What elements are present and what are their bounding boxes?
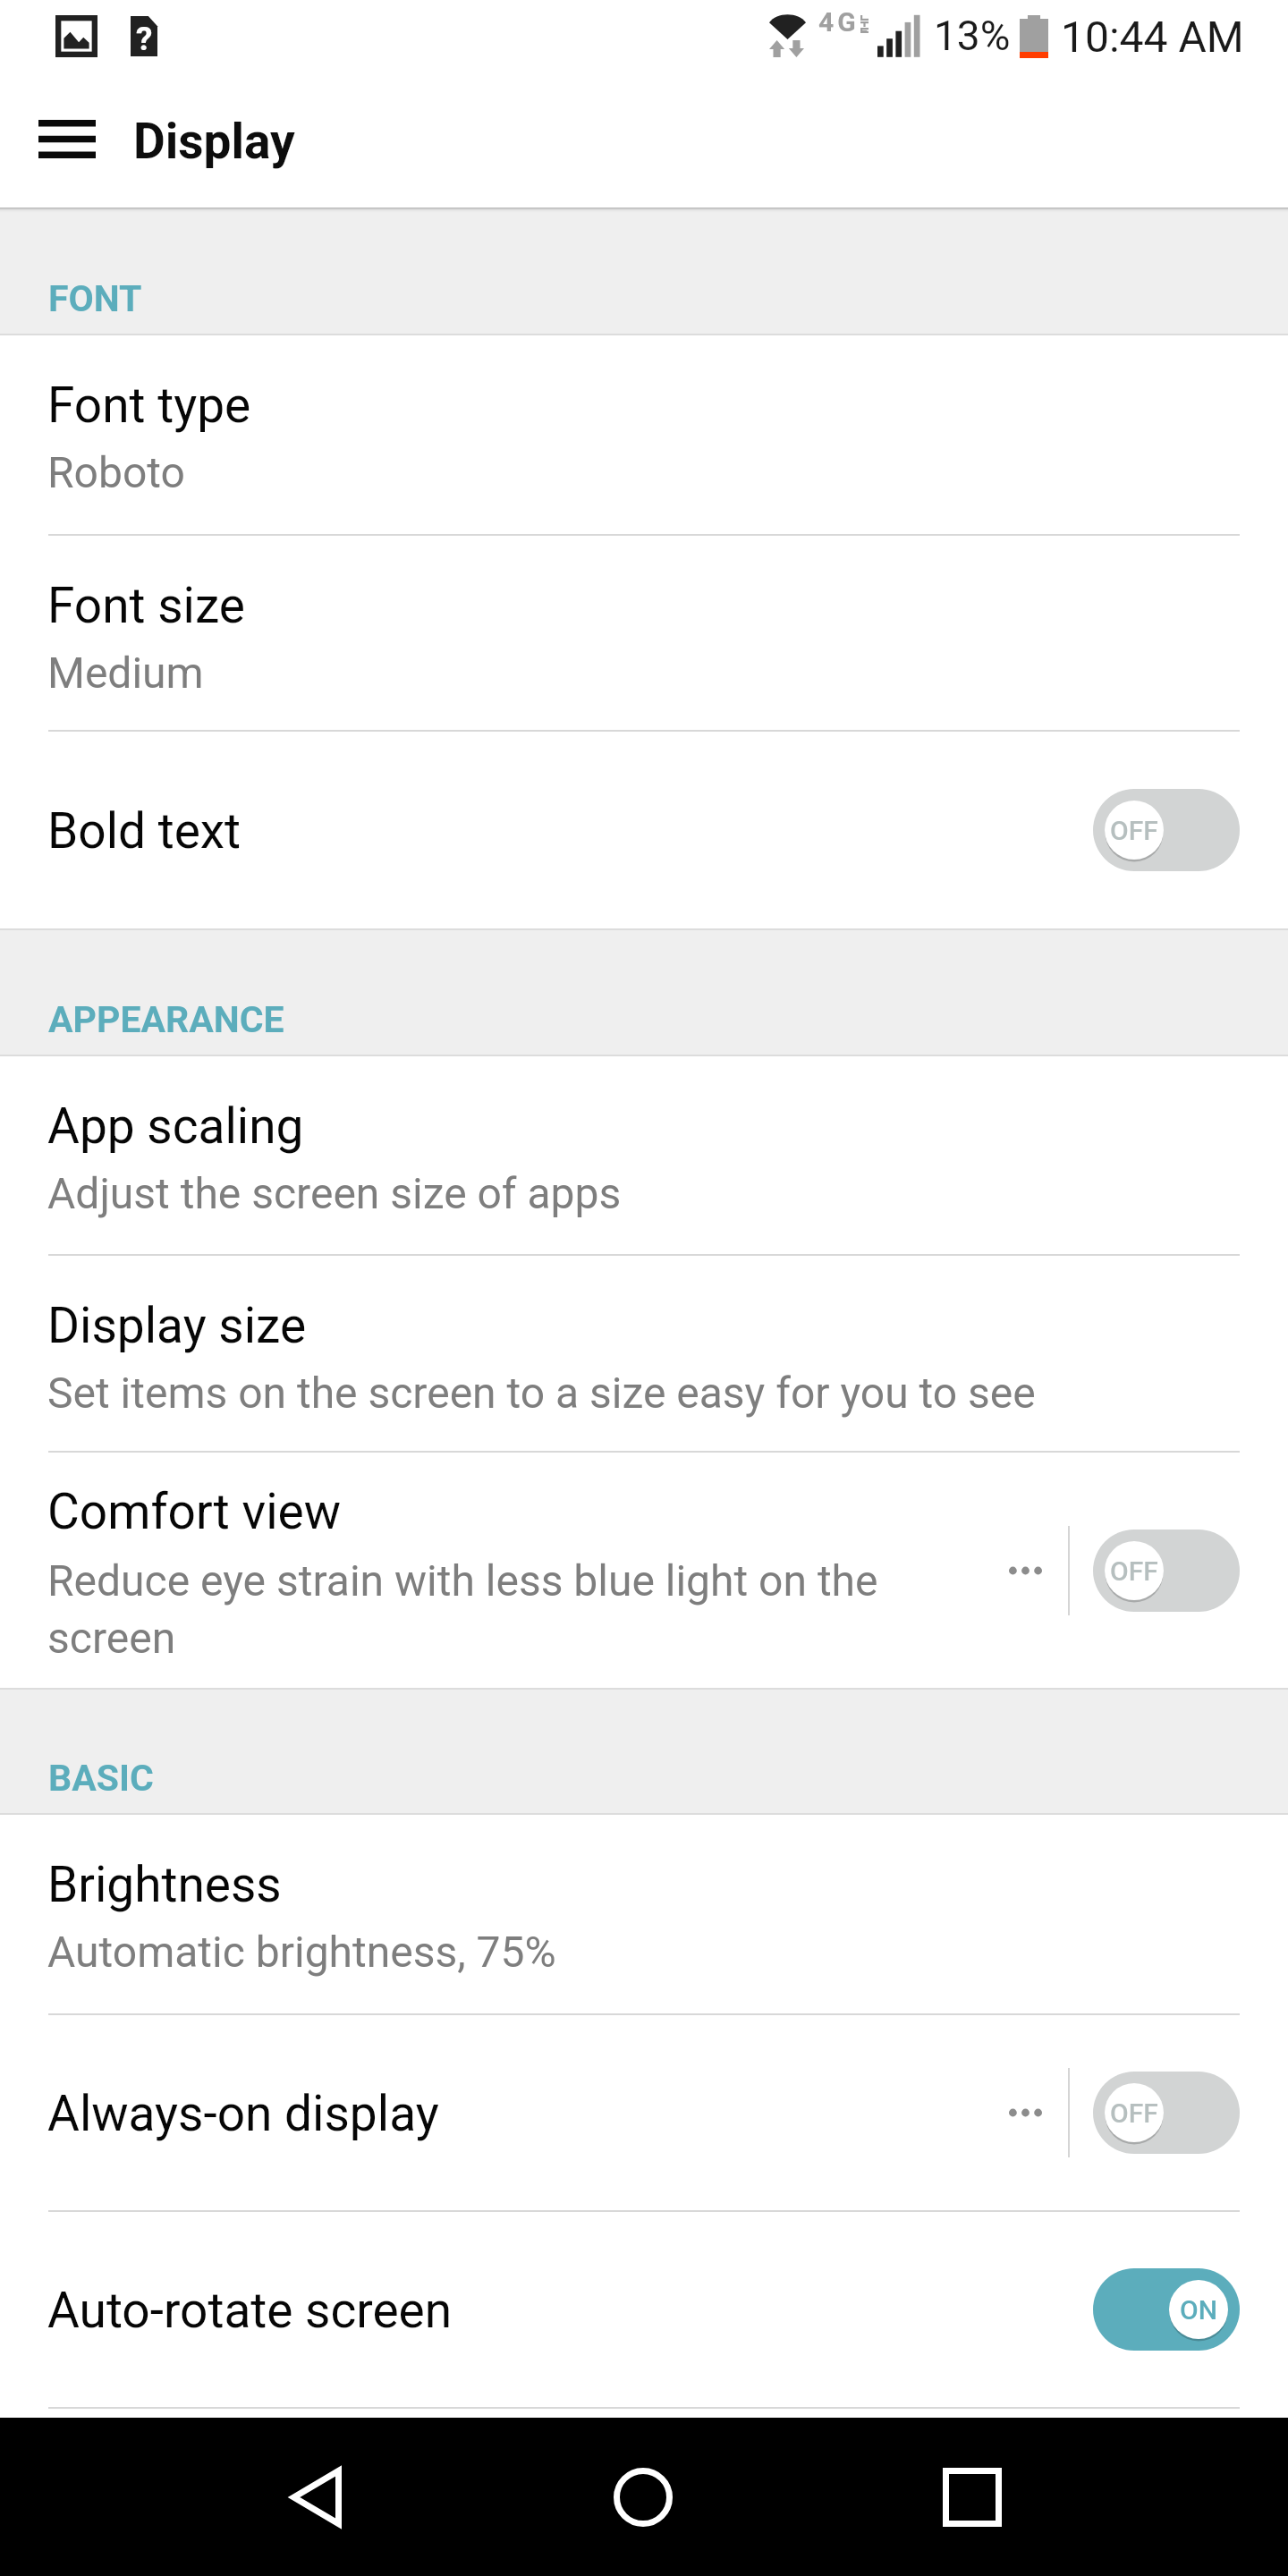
button[interactable]: Comfort view <box>0 1453 1288 1688</box>
button[interactable]: Display size <box>0 1256 1288 1451</box>
staticText: Comfort view <box>47 1483 342 1540</box>
staticText: BASIC <box>48 1757 154 1800</box>
staticText: Bold text <box>47 802 241 860</box>
button[interactable]: Always-on display <box>0 2015 1288 2210</box>
staticText: Set items on the screen to a size easy f… <box>47 1368 1036 1418</box>
staticText: FONT <box>48 277 142 320</box>
staticText: Automatic brightness, 75% <box>47 1927 556 1977</box>
button[interactable]: Open navigation menu <box>10 89 124 188</box>
button[interactable]: Always-on display switch <box>1093 2072 1240 2154</box>
button[interactable]: Font size <box>0 536 1288 730</box>
staticText: Display <box>133 113 295 170</box>
button[interactable]: App scaling <box>0 1056 1288 1254</box>
staticText: Font type <box>47 377 251 434</box>
button[interactable]: Auto-rotate screen switch <box>1093 2268 1240 2351</box>
staticText: Medium <box>47 648 204 698</box>
staticText: App scaling <box>47 1097 304 1155</box>
staticText: Reduce eye strain with less blue light o… <box>47 1555 878 1663</box>
button[interactable]: Bold text <box>0 732 1288 928</box>
staticText: OFF <box>1110 815 1158 846</box>
button[interactable]: Recent apps <box>864 2418 1080 2576</box>
staticText: 4G <box>818 6 860 38</box>
staticText: 13% <box>934 12 1011 60</box>
button[interactable]: Back <box>208 2418 424 2576</box>
staticText: Auto-rotate screen <box>47 2282 453 2339</box>
staticText: Always-on display <box>47 2085 439 2142</box>
button[interactable]: Home <box>535 2418 751 2576</box>
staticText: Font size <box>47 577 245 634</box>
button[interactable]: Comfort view switch <box>1093 1529 1240 1612</box>
button[interactable]: Bold text switch <box>1093 789 1240 871</box>
staticText: OFF <box>1110 2097 1158 2129</box>
staticText: OFF <box>1110 1555 1158 1587</box>
button[interactable]: Auto-rotate screen <box>0 2212 1288 2407</box>
staticText: Display size <box>47 1297 307 1354</box>
button[interactable]: More options for Comfort view <box>982 1524 1068 1617</box>
staticText: Brightness <box>47 1856 282 1913</box>
staticText: ON <box>1180 2294 1217 2326</box>
staticText: ? <box>136 20 153 58</box>
button[interactable]: Font type <box>0 335 1288 534</box>
button[interactable]: More options for Always-on display <box>982 2066 1068 2159</box>
button[interactable]: Brightness <box>0 1815 1288 2013</box>
staticText: APPEARANCE <box>48 998 284 1041</box>
staticText: Adjust the screen size of apps <box>47 1168 622 1218</box>
staticText: Roboto <box>47 447 185 497</box>
staticText: 10:44 AM <box>1061 12 1244 62</box>
